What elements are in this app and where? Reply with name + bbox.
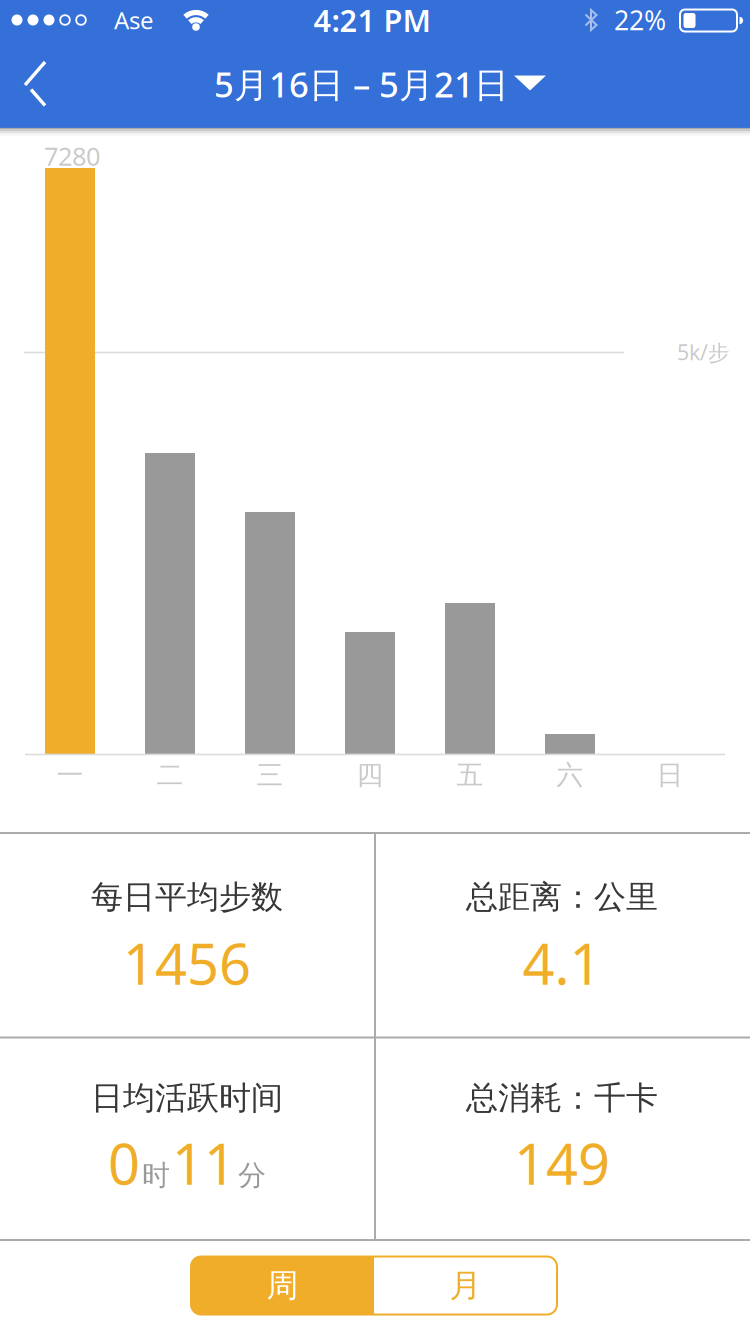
staticText: 日均活跃时间 — [91, 1078, 283, 1118]
staticText: 五 — [456, 759, 483, 791]
staticText: 周 — [266, 1266, 298, 1305]
staticText: 0 — [108, 1126, 140, 1200]
button[interactable]: Back — [0, 40, 70, 128]
staticText: 四 — [356, 759, 383, 791]
staticText: 1456 — [123, 926, 251, 1000]
staticText: Ase — [114, 4, 154, 36]
staticText: 11 — [172, 1126, 236, 1200]
staticText: 日 — [656, 759, 683, 791]
staticText: 总距离：公里 — [466, 877, 658, 917]
staticText: 5k/步 — [677, 338, 729, 366]
staticText: 149 — [514, 1126, 610, 1200]
staticText: 5月16日 – 5月21日 — [214, 61, 509, 107]
staticText: 时 — [142, 1158, 170, 1193]
staticText: 分 — [238, 1158, 266, 1193]
staticText: 六 — [556, 759, 583, 791]
button[interactable]: 周 — [191, 1256, 374, 1314]
staticText: 22% — [614, 2, 666, 38]
staticText: 一 — [56, 759, 83, 791]
button[interactable]: 5月16日 – 5月21日 — [214, 61, 546, 107]
staticText: 总消耗：千卡 — [466, 1078, 658, 1118]
staticText: 每日平均步数 — [91, 877, 283, 917]
staticText: 4:21 PM — [313, 0, 430, 40]
staticText: 三 — [256, 759, 283, 791]
button[interactable]: 月 — [374, 1256, 557, 1314]
staticText: 7280 — [44, 139, 100, 173]
staticText: 二 — [156, 759, 183, 791]
staticText: 4.1 — [522, 926, 601, 1000]
staticText: 月 — [449, 1266, 481, 1305]
